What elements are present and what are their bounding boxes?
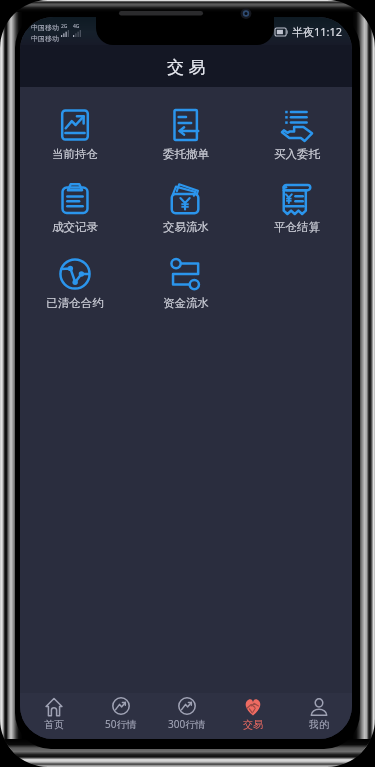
button[interactable]: 成交记录 [48, 180, 102, 236]
button[interactable]: 已清仓合约 [42, 256, 108, 312]
staticText: 平仓结算 [274, 220, 320, 234]
staticText: 已清仓合约 [46, 296, 104, 310]
button[interactable]: 50行情 [87, 693, 154, 739]
button[interactable]: 买入委托 [270, 107, 324, 163]
staticText: 交易 [243, 718, 263, 731]
staticText: 中国移动 [31, 23, 59, 32]
staticText: 首页 [44, 718, 64, 731]
button[interactable]: 委托撤单 [159, 107, 213, 163]
staticText: 中国移动 [31, 34, 59, 43]
button[interactable]: 交易流水 [159, 180, 213, 236]
button[interactable]: 当前持仓 [48, 107, 102, 163]
staticText: 交易流水 [163, 220, 209, 234]
button[interactable]: 平仓结算 [270, 180, 324, 236]
staticText: 成交记录 [52, 220, 98, 234]
button[interactable]: 交易 [220, 693, 286, 739]
button[interactable]: 首页 [20, 693, 87, 739]
button[interactable]: 我的 [286, 693, 352, 739]
button[interactable]: 300行情 [154, 693, 220, 739]
staticText: 半夜11:12 [292, 24, 343, 39]
staticText: 资金流水 [163, 296, 209, 310]
staticText: 我的 [309, 718, 329, 731]
staticText: 2G [61, 23, 68, 30]
staticText: 4G [73, 23, 80, 30]
staticText: 50行情 [105, 717, 137, 731]
button[interactable]: 资金流水 [159, 256, 213, 312]
staticText: 300行情 [168, 717, 206, 731]
staticText: 买入委托 [274, 147, 320, 161]
staticText: 交 易 [167, 55, 206, 78]
staticText: 委托撤单 [163, 147, 209, 161]
staticText: 当前持仓 [52, 147, 98, 161]
